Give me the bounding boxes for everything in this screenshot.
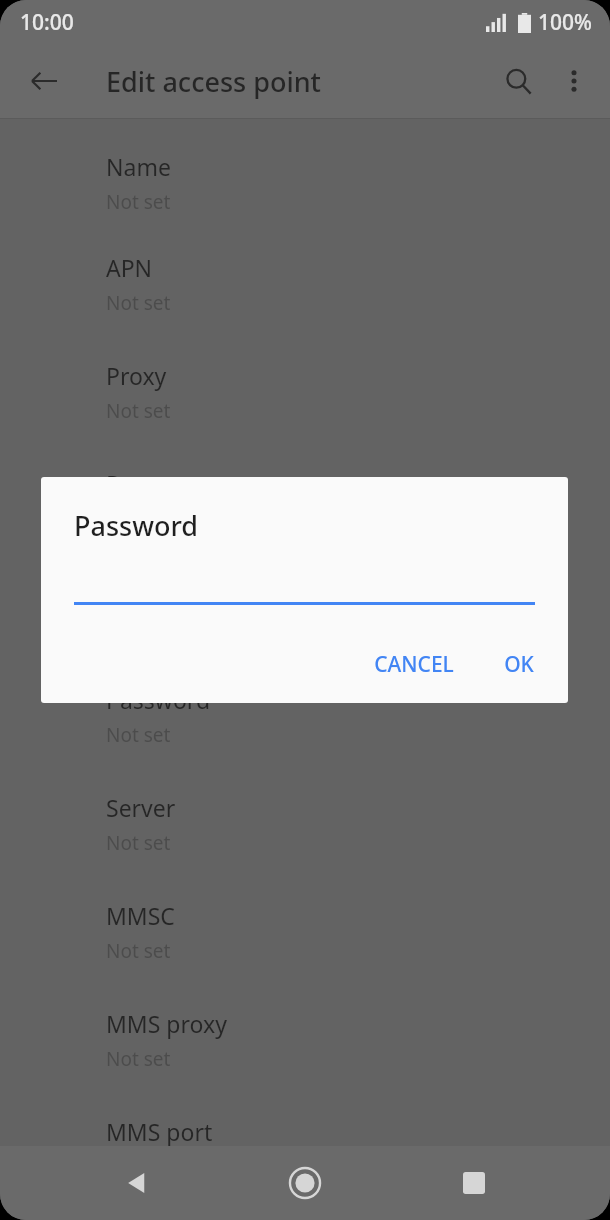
button[interactable]: Home [273, 1151, 337, 1215]
button[interactable]: Port [0, 443, 610, 551]
staticText: MMS port [106, 1116, 213, 1146]
button[interactable]: Recent apps [442, 1151, 506, 1215]
staticText: 10:00 [20, 8, 74, 37]
button[interactable]: MMS proxy [0, 983, 610, 1091]
staticText: 100% [538, 8, 592, 37]
staticText: Username [106, 576, 218, 607]
button[interactable]: OK [490, 640, 548, 689]
staticText: Not set [106, 830, 171, 856]
staticText: Server [106, 792, 176, 823]
staticText: Name [106, 151, 171, 182]
staticText: Password [74, 507, 199, 544]
button[interactable]: Back [105, 1151, 169, 1215]
button[interactable]: APN [0, 227, 610, 335]
staticText: Not set [106, 189, 171, 215]
button[interactable]: More options [546, 53, 602, 109]
staticText: Proxy [106, 360, 167, 391]
button[interactable]: MMS port [0, 1091, 610, 1146]
staticText: Port [106, 468, 152, 499]
button[interactable]: Name [0, 119, 610, 227]
button[interactable]: Server [0, 767, 610, 875]
button[interactable]: Search [490, 53, 546, 109]
staticText: Not set [106, 506, 171, 532]
staticText: CANCEL [374, 650, 454, 679]
staticText: Not set [106, 290, 171, 316]
staticText: Not set [106, 1046, 171, 1072]
staticText: APN [106, 252, 153, 283]
staticText: OK [504, 650, 534, 679]
button[interactable]: Back [16, 53, 72, 109]
button[interactable]: Password [0, 659, 610, 767]
staticText: Edit access point [106, 63, 321, 100]
staticText: MMS proxy [106, 1008, 227, 1039]
button[interactable] [74, 557, 535, 605]
staticText: Not set [106, 938, 171, 964]
button[interactable]: MMSC [0, 875, 610, 983]
staticText: MMSC [106, 900, 175, 931]
button[interactable]: CANCEL [360, 640, 468, 689]
staticText: Not set [106, 722, 171, 748]
staticText: Password [106, 684, 211, 715]
staticText: Not set [106, 398, 171, 424]
button[interactable]: Username [0, 551, 610, 659]
button[interactable]: Proxy [0, 335, 610, 443]
